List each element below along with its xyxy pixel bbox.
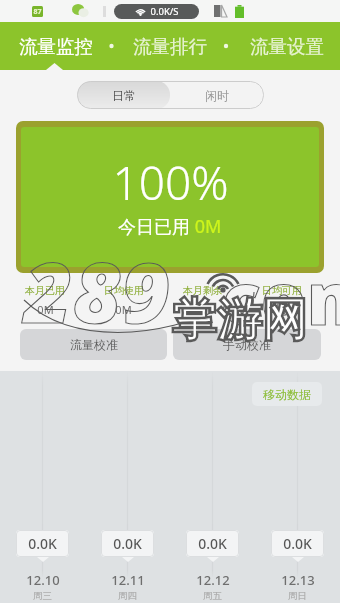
staticText: 12.11 bbox=[111, 571, 145, 589]
staticText: 流量校准 bbox=[70, 337, 118, 352]
staticText: 0M bbox=[115, 302, 132, 317]
button[interactable]: 日常 bbox=[77, 81, 170, 109]
button[interactable]: 流量设置 bbox=[232, 22, 340, 70]
button[interactable]: 流量监控 bbox=[0, 22, 111, 70]
staticText: 12.13 bbox=[281, 571, 315, 589]
staticText: 周日 bbox=[288, 590, 307, 602]
staticText: 5M bbox=[273, 302, 290, 317]
staticText: 日均使用 bbox=[104, 284, 144, 297]
staticText: 0.0K bbox=[28, 534, 57, 553]
staticText: 本月剩余 bbox=[183, 284, 223, 297]
button[interactable]: 流量校准 bbox=[20, 329, 167, 360]
staticText: 掌游网 bbox=[172, 292, 307, 349]
staticText: 100M bbox=[188, 302, 217, 317]
staticText: 周五 bbox=[203, 590, 222, 602]
staticText: 流量设置 bbox=[250, 35, 324, 58]
staticText: 闲时 bbox=[205, 88, 229, 103]
staticText: 周四 bbox=[118, 590, 137, 602]
staticText: 移动数据 bbox=[263, 387, 311, 402]
staticText: 日常 bbox=[112, 88, 136, 103]
staticText: com bbox=[222, 248, 340, 346]
staticText: 本月已用 bbox=[25, 284, 65, 297]
staticText: 0.0K bbox=[283, 534, 312, 553]
staticText: 87 bbox=[33, 7, 42, 17]
staticText: 手动校准 bbox=[223, 337, 271, 352]
button[interactable]: 手动校准 bbox=[173, 329, 321, 360]
button[interactable]: 移动数据 bbox=[252, 382, 322, 406]
staticText: 流量监控 bbox=[19, 35, 93, 58]
button[interactable]: 流量排行 bbox=[114, 22, 225, 70]
staticText: 289 bbox=[24, 233, 171, 347]
staticText: 0.0K bbox=[198, 534, 227, 553]
staticText: 100% bbox=[112, 151, 229, 214]
staticText: 掌游网 bbox=[172, 292, 307, 349]
button[interactable]: 闲时 bbox=[170, 81, 264, 109]
staticText: 12.10 bbox=[26, 571, 60, 589]
staticText: 0.0K bbox=[113, 534, 142, 553]
staticText: 周三 bbox=[33, 590, 52, 602]
staticText: 今日已用 0M bbox=[118, 214, 222, 239]
staticText: 流量排行 bbox=[133, 35, 207, 58]
staticText: 12.12 bbox=[196, 571, 230, 589]
staticText: 0M bbox=[37, 302, 54, 317]
staticText: 日均可用 bbox=[262, 284, 302, 297]
staticText: 0.0K/S bbox=[150, 5, 179, 18]
